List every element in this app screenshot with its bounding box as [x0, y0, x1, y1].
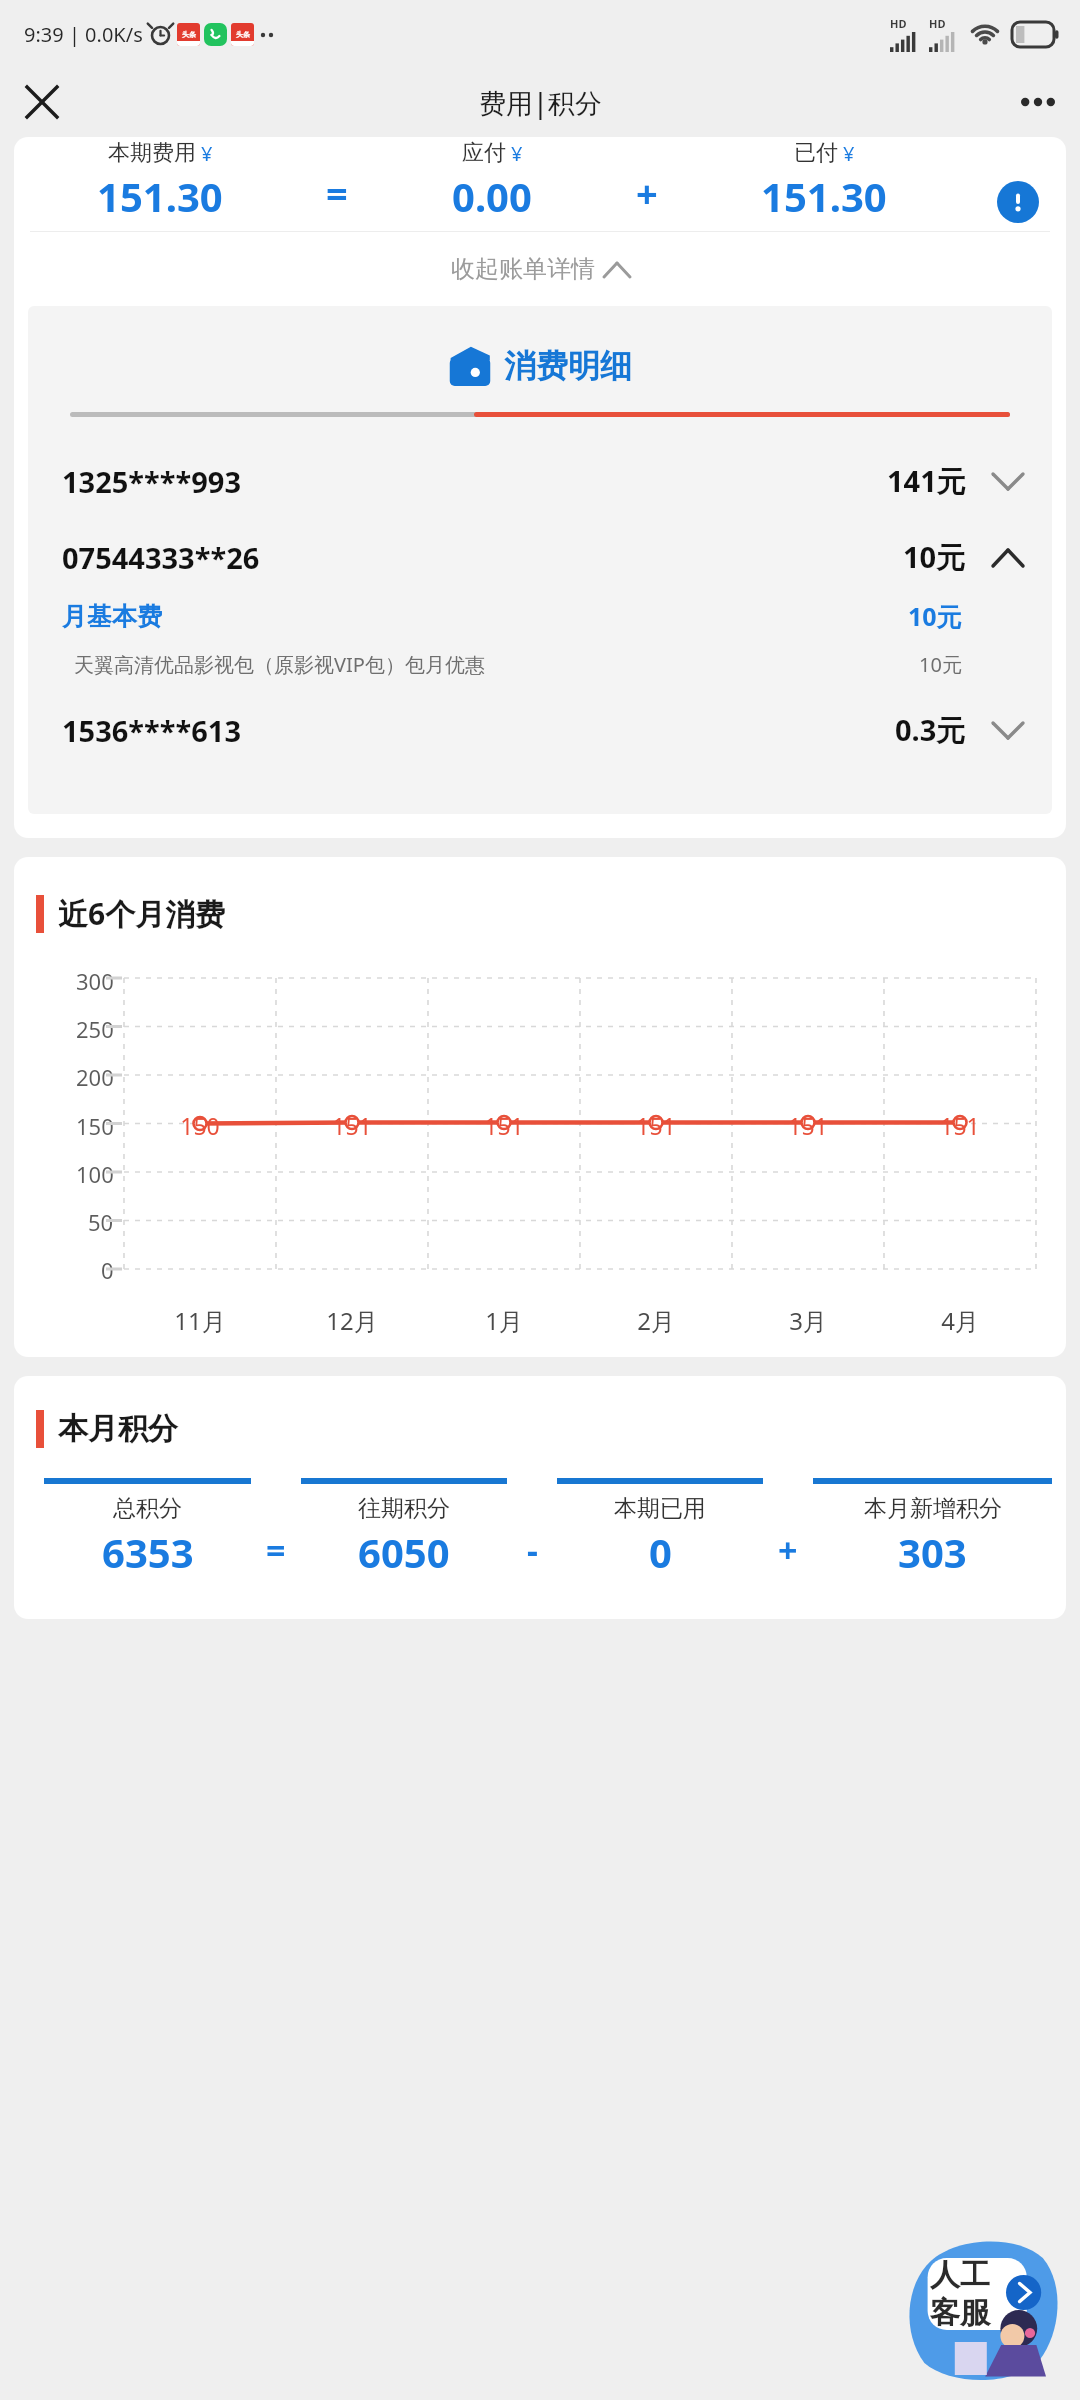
staticText: + [778, 1527, 798, 1573]
staticText: 300 [76, 966, 114, 996]
staticText: 141元 [887, 461, 966, 501]
staticText: 0.00 [452, 169, 532, 223]
staticText: 头条 [182, 30, 196, 39]
staticText: 9:39 | 0.0K/s [24, 21, 143, 48]
staticText: 10元 [908, 599, 962, 633]
staticText: 1325****993 [62, 462, 241, 501]
staticText: 本月积分 [58, 1410, 178, 1448]
staticText: 151.30 [97, 169, 223, 223]
staticText: 近6个月消费 [58, 893, 226, 934]
staticText: 6050 [358, 1525, 450, 1579]
button[interactable]: Close [14, 74, 70, 130]
staticText: 303 [898, 1525, 967, 1579]
staticText: 4月 [941, 1304, 979, 1337]
staticText: 总积分 [113, 1494, 182, 1523]
staticText: 151.30 [761, 169, 887, 223]
staticText: + [636, 167, 658, 219]
button[interactable]: 1536****613 [28, 692, 1052, 768]
staticText: 151 [940, 1110, 980, 1141]
staticText: 200 [76, 1062, 114, 1092]
staticText: 1月 [485, 1304, 523, 1337]
staticText: 50 [88, 1207, 114, 1237]
staticText: 250 [76, 1014, 114, 1044]
staticText: 151 [332, 1110, 372, 1141]
staticText: 本期已用 [614, 1494, 706, 1523]
staticText: HD [890, 16, 907, 31]
button[interactable]: Info [997, 181, 1039, 223]
staticText: 已付 [794, 139, 838, 167]
staticText: 151 [636, 1110, 676, 1141]
button[interactable]: More options [1010, 74, 1066, 130]
staticText: 客服 [930, 2294, 990, 2332]
staticText: 应付 [462, 139, 506, 167]
staticText: 月基本费 [62, 601, 162, 632]
staticText: 本月新增积分 [864, 1494, 1002, 1523]
staticText: ¥ [843, 140, 855, 167]
staticText: = [326, 167, 348, 219]
staticText: 人工 [930, 2256, 990, 2294]
staticText: 151 [788, 1110, 828, 1141]
staticText: 往期积分 [358, 1494, 450, 1523]
staticText: 天翼高清优品影视包（原影视VIP包）包月优惠 [74, 651, 485, 678]
staticText: HD [929, 16, 946, 31]
staticText: ¥ [201, 140, 213, 167]
staticText: 0 [649, 1525, 672, 1579]
staticText: 12月 [326, 1304, 378, 1337]
staticText: 150 [76, 1111, 114, 1141]
staticText: 0 [101, 1255, 114, 1285]
staticText: - [527, 1527, 538, 1573]
staticText: 11月 [174, 1304, 226, 1337]
staticText: ¥ [511, 140, 523, 167]
button[interactable]: 1325****993 [28, 443, 1052, 519]
staticText: 07544333**26 [62, 538, 260, 577]
staticText: 100 [76, 1159, 114, 1189]
staticText: 头条 [236, 30, 250, 39]
staticText: 消费明细 [504, 346, 632, 386]
staticText: 1536****613 [62, 711, 241, 750]
staticText: 10元 [903, 537, 966, 577]
staticText: 151 [484, 1110, 524, 1141]
staticText: 收起账单详情 [451, 254, 595, 284]
staticText: 0.3元 [895, 710, 966, 750]
staticText: 10元 [919, 651, 962, 678]
staticText: 2月 [637, 1304, 675, 1337]
staticText: = [266, 1527, 286, 1573]
staticText: 3月 [789, 1304, 827, 1337]
staticText: 6353 [102, 1525, 194, 1579]
button[interactable]: 人工客服 Customer service [902, 2234, 1062, 2384]
button[interactable]: 07544333**26 [28, 519, 1052, 595]
staticText: 费用|积分 [479, 84, 602, 121]
staticText: 本期费用 [108, 139, 196, 167]
staticText: 150 [180, 1110, 220, 1141]
button[interactable]: 收起账单详情 [14, 232, 1066, 306]
